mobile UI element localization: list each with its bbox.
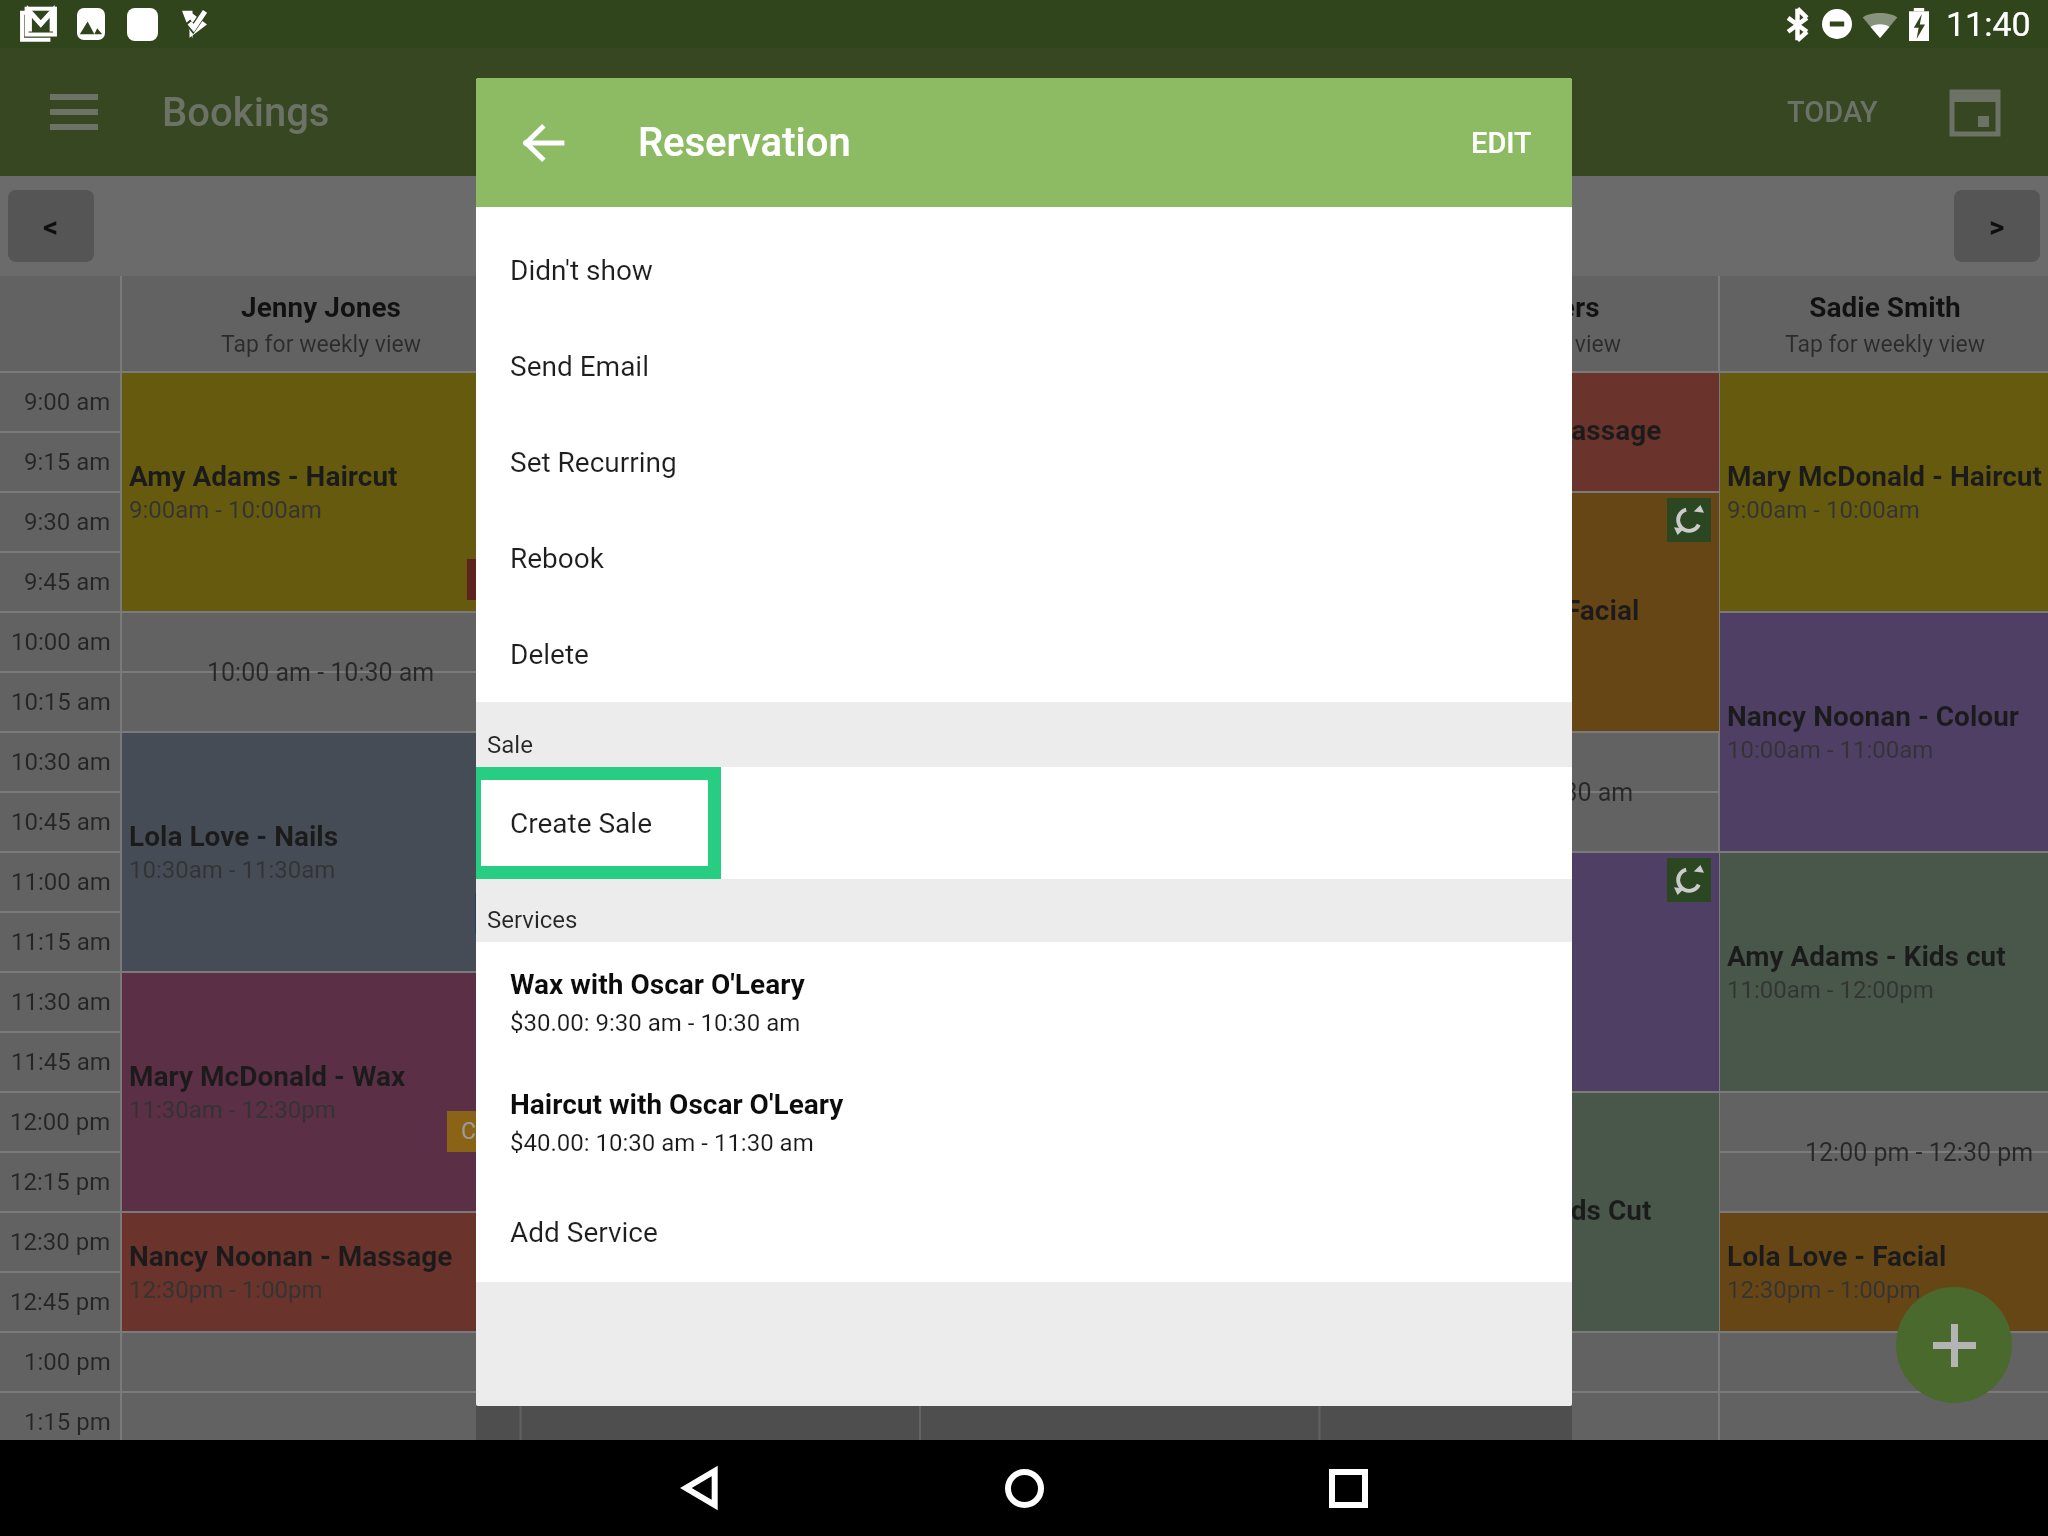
button[interactable]: Mary McDonald - Wax [122, 973, 520, 1211]
button[interactable]: Add booking [1896, 1287, 2012, 1403]
staticText: Add Service [510, 1216, 658, 1249]
button[interactable]: Set Recurring [476, 414, 1572, 510]
button[interactable]: Pick date [1936, 73, 2014, 151]
button[interactable]: Peter Peters [1321, 276, 1721, 372]
staticText: TODAY [1787, 95, 1878, 129]
staticText: Amy Adams - Kids cut [1727, 940, 2006, 973]
button[interactable]: Previous day [8, 190, 94, 262]
staticText: < [43, 209, 59, 244]
button[interactable]: Nancy Noonan - Massage [1321, 373, 1719, 491]
button[interactable]: Lola Love - Facial [1720, 1213, 2048, 1331]
staticText: Services [487, 906, 578, 934]
staticText: Tap for weekly view [621, 331, 821, 358]
staticText: 11:30am - 12:30pm [129, 1096, 336, 1124]
staticText: 9:00am - 10:00am [129, 496, 322, 524]
staticText: Didn't show [510, 254, 653, 287]
button[interactable]: Amy Adams - Kids Cut [1321, 1093, 1719, 1331]
staticText: Jenny Jones [241, 291, 401, 324]
button[interactable]: 10:00 am - 10:30 am [1321, 733, 1719, 851]
staticText: Mary McDonald - Haircut [1727, 460, 2042, 493]
button[interactable]: Oscar O'Leary [521, 276, 921, 372]
button[interactable]: Wax with Oscar O'Leary [476, 942, 1572, 1062]
staticText: Tap for weekly view [1421, 331, 1621, 358]
staticText: 10:30 am [11, 748, 111, 776]
staticText: 9:30 am [24, 508, 111, 536]
staticText: 12:45 pm [10, 1288, 111, 1316]
button[interactable]: Amy Adams - Haircut [122, 373, 520, 611]
button[interactable]: Didn't show [476, 222, 1572, 318]
staticText: Tap for weekly view [221, 331, 421, 358]
staticText: Peter Peters [1442, 291, 1600, 324]
staticText: Lola Love - Facial [1727, 1240, 1947, 1273]
staticText: $30.00: 9:30 am - 10:30 am [510, 1009, 801, 1037]
staticText: Mary McDonald - Facial [1342, 594, 1640, 627]
button[interactable]: Mary McDonald - Facial [1321, 493, 1719, 731]
staticText: $40.00: 10:30 am - 11:30 am [510, 1129, 814, 1157]
staticText: Nancy Noonan - Colour [1727, 700, 2020, 733]
staticText: 10:00am - 11:00am [1727, 736, 1934, 764]
staticText: Rebook [510, 542, 604, 575]
staticText: Nancy Noonan - Massage [129, 1240, 453, 1273]
button[interactable]: Home [862, 1440, 1186, 1536]
staticText: 10:45 am [11, 808, 111, 836]
button[interactable]: Amy Adams - Kids cut [1720, 853, 2048, 1091]
button[interactable]: Back [502, 101, 586, 185]
staticText: Sadie Smith [1809, 291, 1961, 324]
button[interactable]: Add Service [476, 1182, 1572, 1282]
button[interactable]: EDIT [1447, 106, 1556, 180]
staticText: 10:00 am [11, 628, 111, 656]
staticText: 10:00 am - 10:30 am [207, 658, 435, 687]
button[interactable]: Create Sale [476, 767, 1572, 879]
button[interactable]: Nancy Noonan - Massage [122, 1213, 520, 1331]
button[interactable]: 10:00 am - 10:30 am [122, 613, 520, 731]
staticText: Send Email [510, 350, 649, 383]
staticText: 1:00 pm [24, 1348, 111, 1376]
staticText: 1:15 pm [24, 1408, 111, 1436]
staticText: 11:40 [1946, 4, 2031, 44]
staticText: Delete [510, 638, 589, 671]
staticText: Bookings [162, 89, 330, 136]
button[interactable]: 12:00 pm - 12:30 pm [1720, 1093, 2048, 1211]
button[interactable] [1321, 853, 1719, 1091]
staticText: Reservation [638, 119, 851, 166]
staticText: 9:45 am [24, 568, 111, 596]
staticText: 12:30pm - 1:00pm [1727, 1276, 1921, 1304]
staticText: Set Recurring [510, 446, 677, 479]
button[interactable]: TODAY [1767, 79, 1898, 145]
staticText: 11:15 am [11, 928, 111, 956]
staticText: Tap for weekly view [1785, 331, 1985, 358]
staticText: Nancy Noonan - Massage [1338, 414, 1662, 447]
button[interactable]: Recent apps [1186, 1440, 1510, 1536]
staticText: Con [461, 1118, 502, 1145]
staticText: Wax with Oscar O'Leary [510, 968, 805, 1001]
button[interactable]: Delete [476, 606, 1572, 702]
staticText: Lola Love - Nails [129, 820, 339, 853]
staticText: 10:15 am [11, 688, 111, 716]
staticText: 12:00 pm [10, 1108, 111, 1136]
button[interactable]: Back [538, 1440, 862, 1536]
staticText: 12:15 pm [10, 1168, 111, 1196]
staticText: Sale [487, 731, 533, 759]
button[interactable]: Send Email [476, 318, 1572, 414]
button[interactable]: Rebook [476, 510, 1572, 606]
staticText: 10:00 am - 10:30 am [1406, 778, 1634, 807]
staticText: 9:15 am [24, 448, 111, 476]
staticText: 11:30 am [11, 988, 111, 1016]
staticText: 9:00am - 10:00am [1727, 496, 1920, 524]
staticText: > [1989, 209, 2005, 244]
button[interactable]: Haircut with Oscar O'Leary [476, 1062, 1572, 1182]
button[interactable]: Sadie Smith [1721, 276, 2048, 372]
staticText: 12:30 pm [10, 1228, 111, 1256]
staticText: Amy Adams - Haircut [129, 460, 398, 493]
button[interactable]: Lola Love - Nails [122, 733, 520, 971]
button[interactable]: Jenny Jones [121, 276, 521, 372]
staticText: 12:00 pm - 12:30 pm [1805, 1138, 2034, 1167]
staticText: Haircut with Oscar O'Leary [510, 1088, 844, 1121]
button[interactable]: Nancy Noonan - Colour [1720, 613, 2048, 851]
button[interactable]: Next day [1954, 190, 2040, 262]
button[interactable]: Mary McDonald - Haircut [1720, 373, 2048, 611]
button[interactable]: Open navigation menu [36, 74, 112, 150]
staticText: Amy Adams - Kids Cut [1369, 1194, 1652, 1227]
